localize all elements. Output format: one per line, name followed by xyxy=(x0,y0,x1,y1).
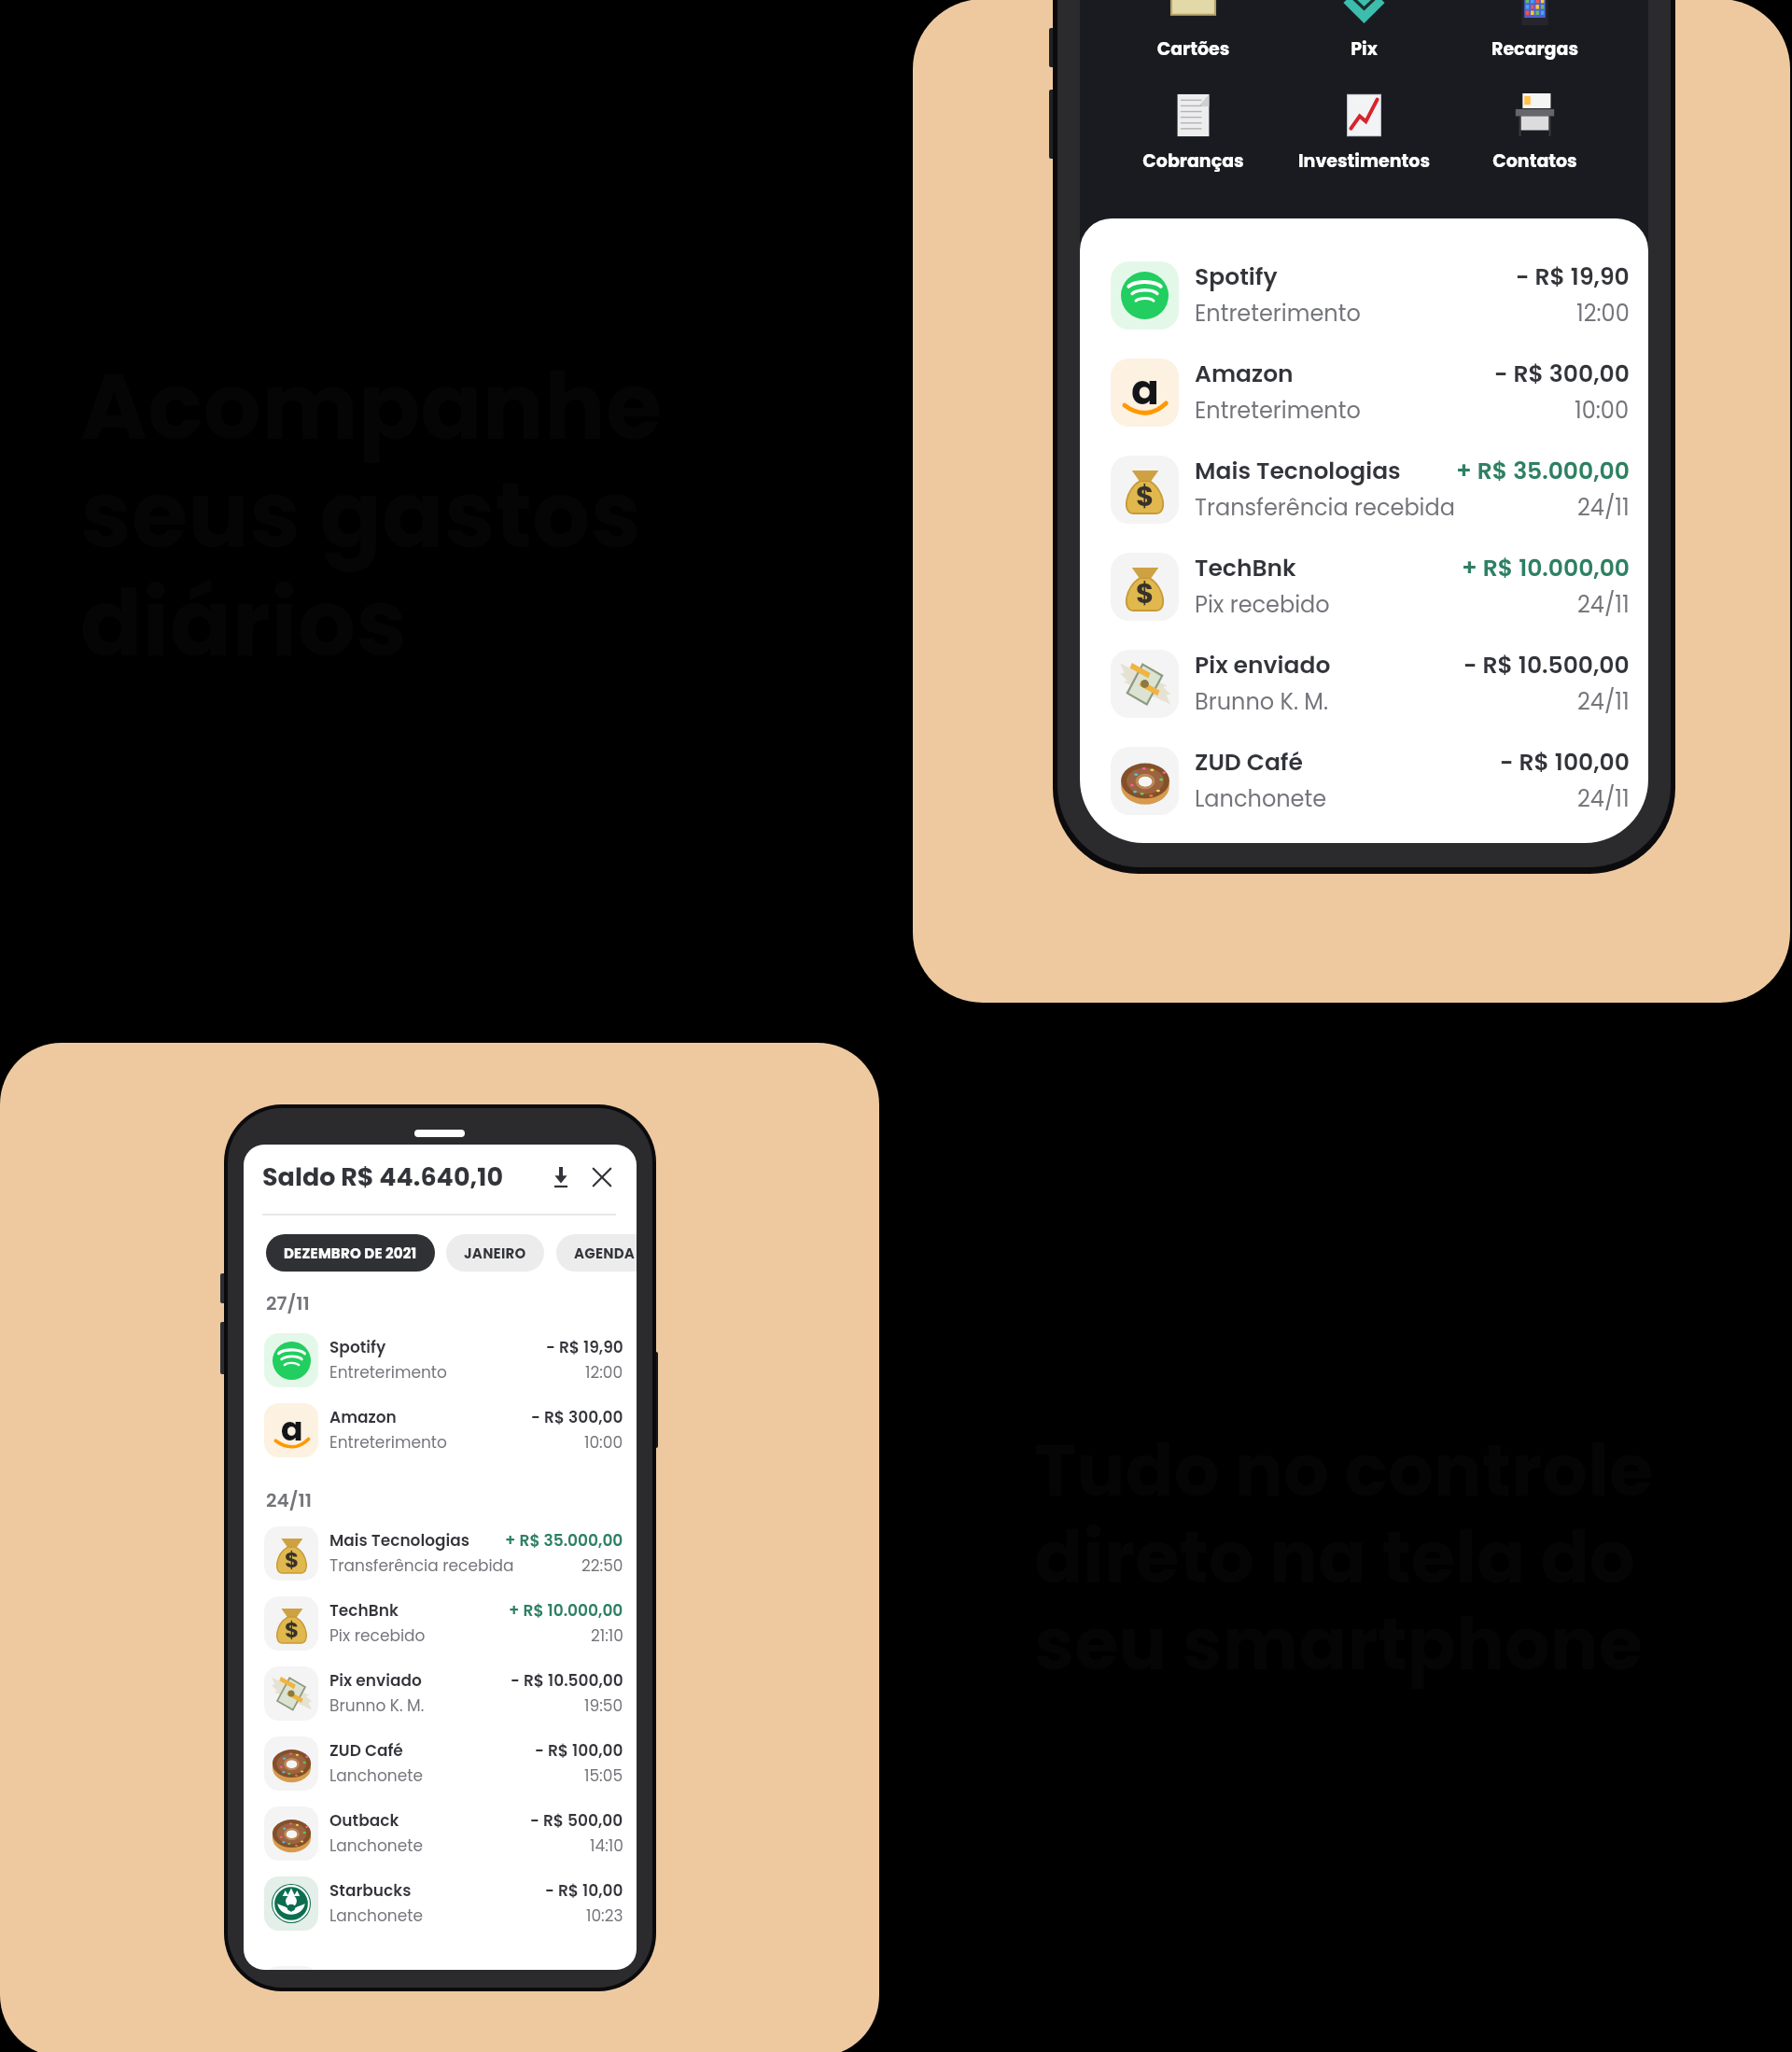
staticText: Lanchonete xyxy=(329,1834,423,1857)
button[interactable]: Cartões xyxy=(1108,0,1279,62)
button[interactable]: AGENDAMENTOS xyxy=(556,1234,637,1272)
staticText: 14:10 xyxy=(590,1834,623,1857)
button[interactable]: JANEIRO xyxy=(446,1234,544,1272)
staticText: JANEIRO xyxy=(464,1244,526,1263)
staticText: + R$ 10.000,00 xyxy=(509,1599,623,1622)
staticText: Lanchonete xyxy=(1195,783,1327,815)
staticText: - R$ 19,90 xyxy=(1516,260,1630,293)
staticText: + R$ 35.000,00 xyxy=(505,1529,623,1552)
button[interactable]: Pix xyxy=(1279,0,1449,62)
button[interactable]: $ xyxy=(244,1588,637,1658)
button[interactable]: a xyxy=(244,1395,637,1465)
staticText: Amazon xyxy=(1195,358,1294,390)
staticText: Pix recebido xyxy=(1195,589,1330,621)
button[interactable]: Uber xyxy=(244,1958,637,1970)
button[interactable]: Spotify xyxy=(244,1325,637,1395)
staticText: 24/11 xyxy=(266,1487,312,1513)
staticText: Spotify xyxy=(1195,260,1278,293)
staticText: + R$ 35.000,00 xyxy=(1456,455,1630,487)
staticText: Pix xyxy=(1279,36,1449,62)
staticText: Cobranças xyxy=(1108,148,1279,174)
button[interactable]: Contatos xyxy=(1449,93,1620,174)
staticText: Pix enviado xyxy=(329,1669,422,1692)
button[interactable]: Spotify xyxy=(1080,246,1648,344)
staticText: 24/11 xyxy=(1577,783,1630,815)
staticText: 15:05 xyxy=(584,1764,623,1787)
button[interactable]: Pix enviado xyxy=(244,1658,637,1728)
staticText: - R$ 300,00 xyxy=(1494,358,1630,390)
staticText: Amazon xyxy=(329,1406,397,1428)
button[interactable]: $ xyxy=(1080,538,1648,635)
button[interactable]: ZUD Café xyxy=(244,1728,637,1798)
staticText: 12:00 xyxy=(1576,298,1630,330)
staticText: Cartões xyxy=(1108,36,1279,62)
button[interactable]: Pix enviado xyxy=(1080,635,1648,732)
staticText: Entreterimento xyxy=(1195,395,1361,427)
staticText: 24/11 xyxy=(1577,589,1630,621)
button[interactable]: Outback xyxy=(244,1798,637,1868)
staticText: + R$ 10.000,00 xyxy=(1462,552,1630,584)
staticText: Spotify xyxy=(329,1336,386,1358)
staticText: Entreterimento xyxy=(1195,298,1361,330)
staticText: Investimentos xyxy=(1279,148,1449,174)
staticText: - R$ 300,00 xyxy=(531,1406,623,1428)
staticText: Lanchonete xyxy=(329,1904,423,1927)
staticText: 12:00 xyxy=(585,1361,623,1384)
staticText: Contatos xyxy=(1449,148,1620,174)
staticText: Entreterimento xyxy=(329,1361,447,1384)
button[interactable]: Fechar xyxy=(586,1161,618,1193)
staticText: Outback xyxy=(329,1809,399,1832)
button[interactable]: Recargas xyxy=(1449,0,1620,62)
staticText: a xyxy=(1131,361,1159,415)
button[interactable]: $ xyxy=(1080,441,1648,538)
staticText: 24/11 xyxy=(1577,492,1630,524)
staticText: 22:50 xyxy=(581,1554,623,1577)
staticText: TechBnk xyxy=(1195,552,1296,584)
staticText: TechBnk xyxy=(329,1599,399,1622)
button[interactable]: Baixar extrato xyxy=(545,1161,577,1193)
button[interactable]: Starbucks xyxy=(244,1868,637,1938)
staticText: Transferência recebida xyxy=(1195,492,1455,524)
staticText: Brunno K. M. xyxy=(329,1694,425,1717)
staticText: 10:23 xyxy=(586,1904,623,1927)
staticText: Recargas xyxy=(1449,36,1620,62)
staticText: Starbucks xyxy=(329,1879,412,1902)
staticText: ZUD Café xyxy=(1195,746,1303,779)
staticText: - R$ 100,00 xyxy=(1500,746,1630,779)
staticText: Pix enviado xyxy=(1195,649,1331,682)
staticText: Brunno K. M. xyxy=(1195,686,1329,718)
staticText: $ xyxy=(285,1615,300,1645)
staticText: DEZEMBRO DE 2021 xyxy=(284,1244,417,1263)
staticText: $ xyxy=(1136,477,1155,515)
staticText: - R$ 19,90 xyxy=(546,1336,623,1358)
staticText: 10:00 xyxy=(584,1431,623,1454)
staticText: $ xyxy=(1136,574,1155,612)
staticText: Lanchonete xyxy=(329,1764,423,1787)
button[interactable]: ZUD Café xyxy=(1080,732,1648,829)
staticText: ZUD Café xyxy=(329,1739,403,1762)
staticText: $ xyxy=(285,1545,300,1575)
staticText: Pix recebido xyxy=(329,1624,426,1647)
staticText: - R$ 10.500,00 xyxy=(1463,649,1630,682)
staticText: 21:10 xyxy=(591,1624,623,1647)
button[interactable]: a xyxy=(1080,344,1648,441)
staticText: Mais Tecnologias xyxy=(1195,455,1401,487)
staticText: 27/11 xyxy=(266,1290,310,1316)
staticText: - R$ 27,40 xyxy=(543,1969,623,1970)
button[interactable]: Investimentos xyxy=(1279,93,1449,174)
staticText: - R$ 100,00 xyxy=(535,1739,623,1762)
button[interactable]: $ xyxy=(244,1518,637,1588)
staticText: - R$ 10.500,00 xyxy=(511,1669,623,1692)
staticText: - R$ 10,00 xyxy=(545,1879,623,1902)
button[interactable]: Cobranças xyxy=(1108,93,1279,174)
staticText: 24/11 xyxy=(1577,686,1630,718)
staticText: 19:50 xyxy=(584,1694,623,1717)
staticText: Saldo R$ 44.640,10 xyxy=(262,1160,504,1195)
staticText: Mais Tecnologias xyxy=(329,1529,470,1552)
button[interactable]: DEZEMBRO DE 2021 xyxy=(266,1234,435,1272)
staticText: Transferência recebida xyxy=(329,1554,514,1577)
staticText: a xyxy=(281,1406,303,1448)
